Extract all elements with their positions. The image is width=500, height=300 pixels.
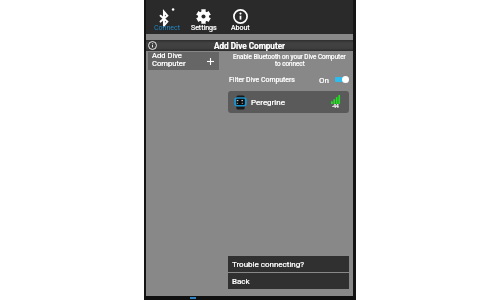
- staticText: On: [319, 76, 329, 85]
- staticText: Settings: [191, 24, 217, 32]
- staticText: to connect: [275, 60, 305, 67]
- button[interactable]: Connect: [147, 0, 184, 34]
- button[interactable]: Add Dive Computer: [148, 52, 219, 70]
- staticText: Add Dive Computer: [214, 41, 286, 51]
- staticText: Add Dive Computer: [152, 51, 186, 68]
- button[interactable]: Trouble connecting?: [228, 256, 349, 272]
- button[interactable]: Filter Dive Computers: [229, 74, 350, 86]
- staticText: Peregrine: [251, 98, 285, 107]
- button[interactable]: Peregrine: [228, 91, 349, 113]
- staticText: Back: [232, 277, 250, 286]
- button[interactable]: Settings: [184, 0, 221, 34]
- button[interactable]: Info: [148, 41, 157, 50]
- staticText: Trouble connecting?: [232, 260, 305, 269]
- button[interactable]: About: [221, 0, 258, 34]
- staticText: Enable Bluetooth on your Dive Computer: [233, 53, 346, 60]
- staticText: Connect: [154, 24, 180, 32]
- staticText: About: [231, 24, 250, 32]
- button[interactable]: Back: [228, 273, 349, 289]
- staticText: -44: [332, 104, 339, 110]
- staticText: Filter Dive Computers: [229, 76, 295, 84]
